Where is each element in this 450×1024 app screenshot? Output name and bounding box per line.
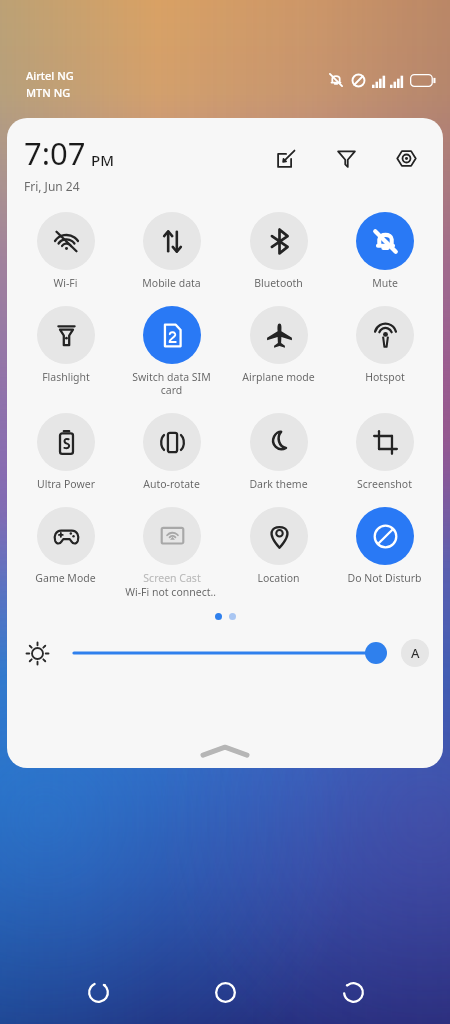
staticText: Wi-Fi bbox=[53, 276, 78, 290]
button[interactable]: Mobile data bbox=[124, 210, 219, 290]
button[interactable]: Bluetooth bbox=[231, 210, 326, 290]
staticText: Wi-Fi not connect… bbox=[125, 585, 219, 599]
staticText: Mobile data bbox=[142, 276, 201, 290]
button[interactable]: Settings bbox=[391, 143, 421, 173]
staticText: Flashlight bbox=[42, 370, 90, 384]
button[interactable]: Auto-rotate bbox=[124, 411, 219, 491]
button[interactable]: Screen Cast bbox=[124, 505, 219, 599]
staticText: Screenshot bbox=[357, 477, 412, 491]
staticText: Switch data SIM card bbox=[132, 370, 211, 397]
staticText: Screen Cast bbox=[143, 571, 201, 585]
button[interactable]: Ultra Power bbox=[18, 411, 113, 491]
button[interactable]: Wi-Fi bbox=[18, 210, 113, 290]
staticText: Auto-rotate bbox=[143, 477, 200, 491]
button[interactable]: Airplane mode bbox=[231, 304, 326, 384]
button[interactable]: Recents bbox=[68, 962, 128, 1022]
staticText: MTN NG bbox=[26, 85, 71, 100]
button[interactable]: Screenshot bbox=[337, 411, 432, 491]
button[interactable]: Auto brightness bbox=[401, 639, 429, 667]
button[interactable]: Switch data SIM card bbox=[124, 304, 219, 397]
staticText: Ultra Power bbox=[37, 477, 95, 491]
staticText: Fri, Jun 24 bbox=[24, 178, 80, 194]
staticText: Mute bbox=[372, 276, 398, 290]
staticText: A bbox=[411, 644, 420, 662]
button[interactable]: Game Mode bbox=[18, 505, 113, 585]
button[interactable]: Do Not Disturb bbox=[337, 505, 432, 585]
staticText: Airtel NG bbox=[26, 68, 74, 83]
button[interactable]: Back bbox=[323, 962, 383, 1022]
staticText: Game Mode bbox=[35, 571, 96, 585]
button[interactable] bbox=[74, 641, 389, 665]
button[interactable]: Hotspot bbox=[337, 304, 432, 384]
staticText: Dark theme bbox=[249, 477, 308, 491]
button[interactable]: Dark theme bbox=[231, 411, 326, 491]
staticText: Do Not Disturb bbox=[347, 571, 422, 585]
button[interactable]: Location bbox=[231, 505, 326, 585]
button[interactable]: Mute bbox=[337, 210, 432, 290]
staticText: Bluetooth bbox=[254, 276, 303, 290]
button[interactable]: Home bbox=[195, 962, 255, 1022]
staticText: 7:07 bbox=[24, 132, 86, 174]
staticText: Location bbox=[257, 571, 300, 585]
button[interactable]: Edit bbox=[271, 143, 301, 173]
button[interactable]: Filter bbox=[331, 143, 361, 173]
staticText: Airplane mode bbox=[242, 370, 315, 384]
staticText: PM bbox=[91, 150, 114, 170]
button[interactable]: Flashlight bbox=[18, 304, 113, 384]
staticText: Hotspot bbox=[365, 370, 405, 384]
